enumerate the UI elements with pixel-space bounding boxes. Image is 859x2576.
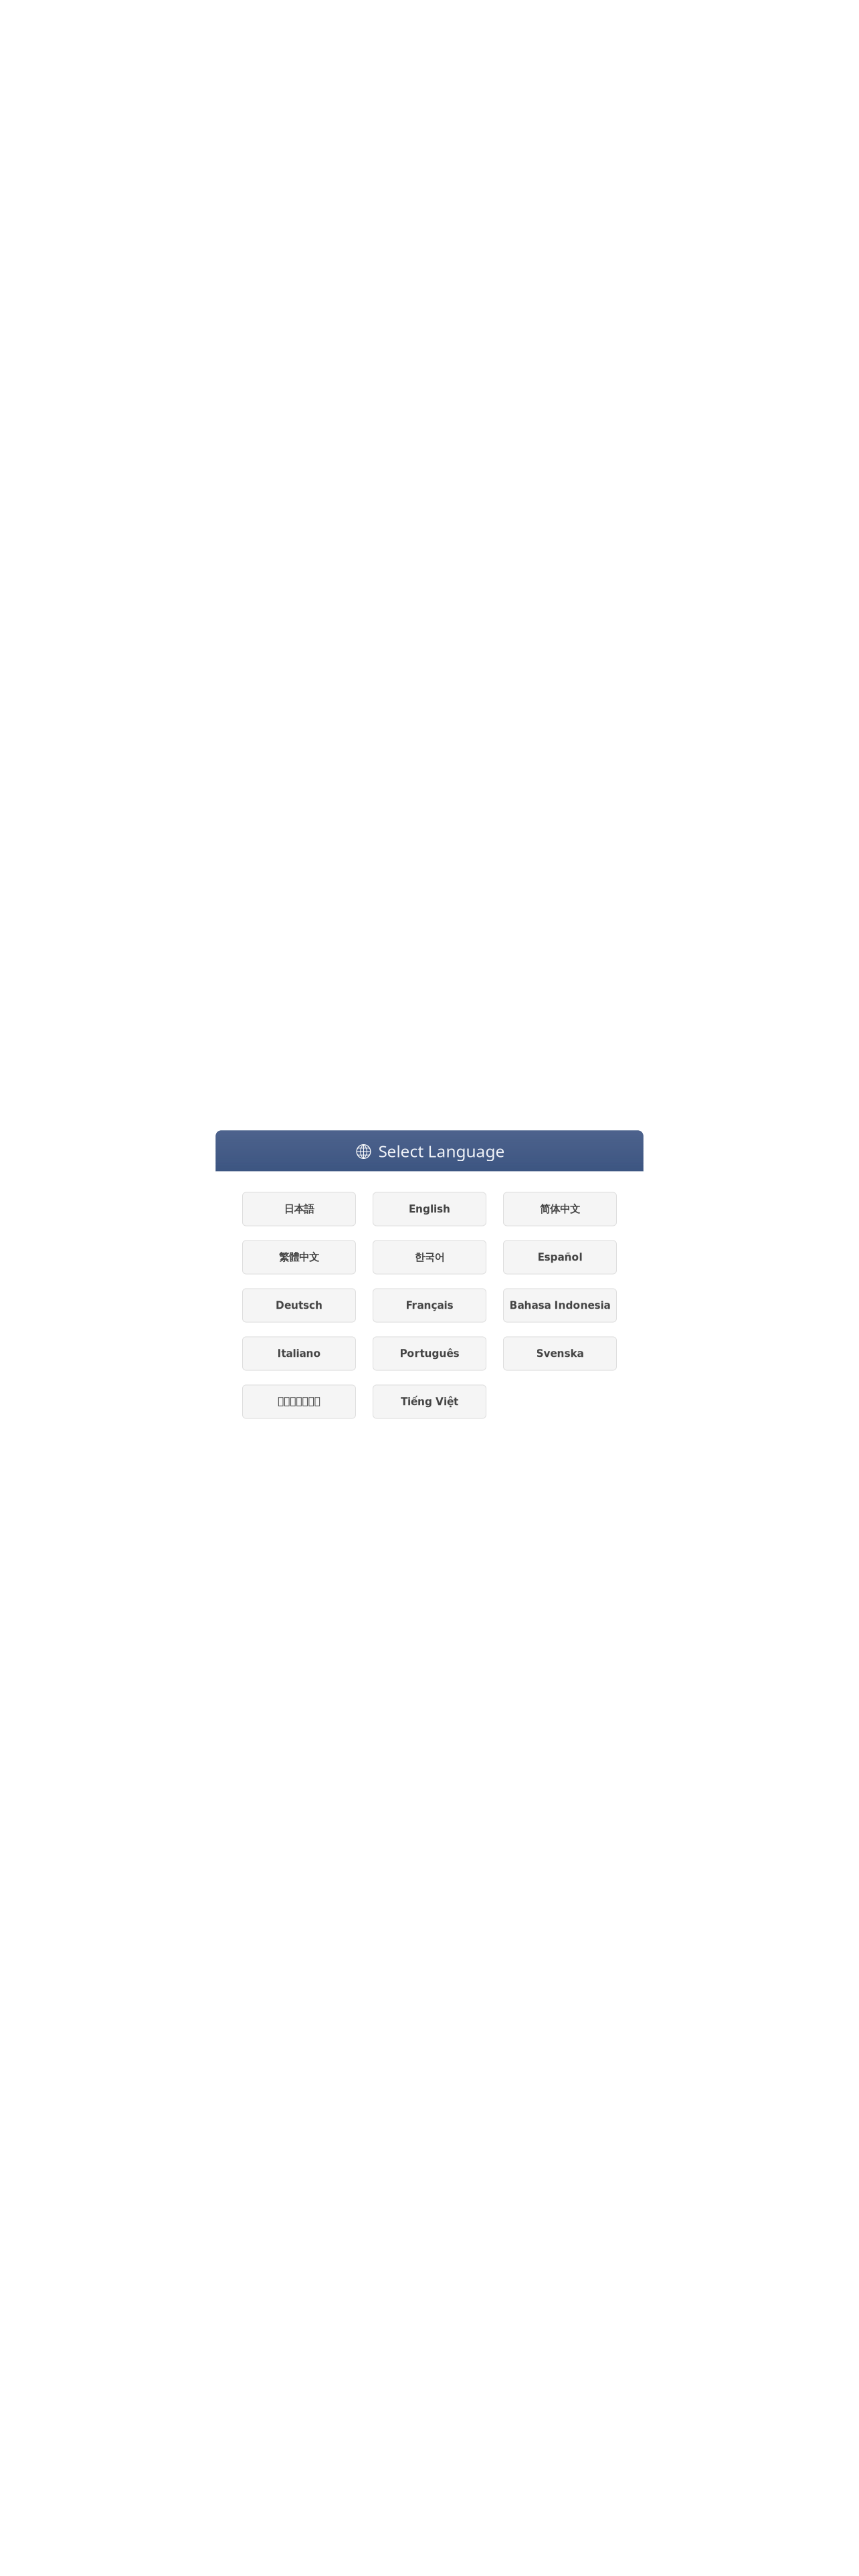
button[interactable]: English bbox=[373, 1192, 486, 1226]
staticText: 日本語 bbox=[284, 1203, 314, 1216]
staticText: Português bbox=[400, 1348, 459, 1359]
staticText: Svenska bbox=[536, 1348, 584, 1359]
button[interactable]: 한국어 bbox=[373, 1240, 486, 1274]
staticText: Select Language bbox=[378, 1140, 505, 1162]
button[interactable]: Français bbox=[373, 1288, 486, 1322]
button[interactable]: Tiếng Việt bbox=[373, 1385, 486, 1419]
button[interactable]: Svenska bbox=[503, 1336, 617, 1371]
staticText: 繁體中文 bbox=[279, 1251, 319, 1264]
button[interactable]: Bahasa Indonesia bbox=[503, 1288, 617, 1322]
button[interactable]: Español bbox=[503, 1240, 617, 1274]
staticText: 简体中文 bbox=[540, 1203, 580, 1216]
staticText: Italiano bbox=[277, 1348, 321, 1359]
button[interactable]: Deutsch bbox=[242, 1288, 356, 1322]
button[interactable] bbox=[242, 1385, 356, 1419]
button[interactable]: 简体中文 bbox=[503, 1192, 617, 1226]
staticText: Français bbox=[406, 1299, 453, 1311]
button[interactable]: 日本語 bbox=[242, 1192, 356, 1226]
staticText: Bahasa Indonesia bbox=[509, 1299, 610, 1311]
button[interactable]: 繁體中文 bbox=[242, 1240, 356, 1274]
button[interactable]: Português bbox=[373, 1336, 486, 1371]
staticText: Español bbox=[538, 1251, 582, 1263]
staticText: English bbox=[409, 1203, 450, 1215]
staticText: 한국어 bbox=[414, 1251, 445, 1264]
staticText: Tiếng Việt bbox=[401, 1396, 458, 1408]
staticText: Deutsch bbox=[276, 1299, 322, 1311]
button[interactable]: Italiano bbox=[242, 1336, 356, 1371]
